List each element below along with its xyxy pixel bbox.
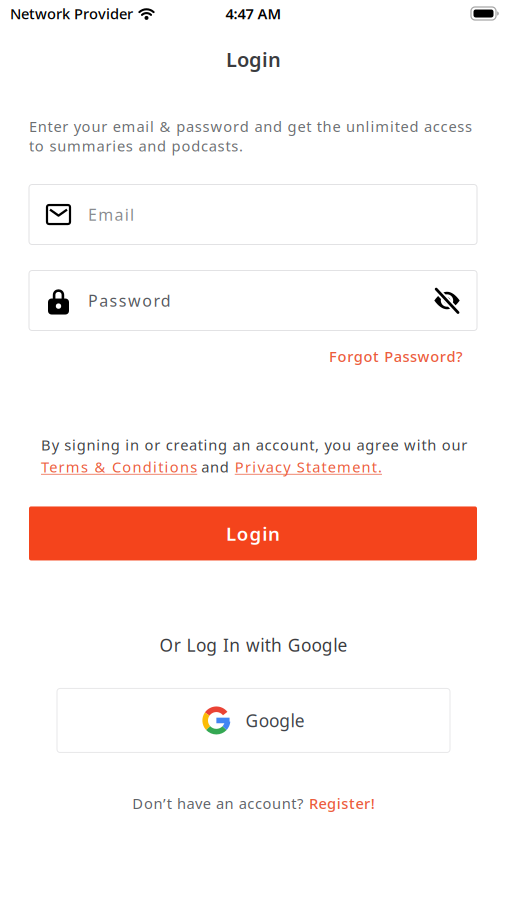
- staticText: Terms & Conditions: [41, 457, 197, 476]
- button[interactable]: Password: [29, 270, 477, 330]
- button[interactable]: Login: [29, 506, 477, 560]
- staticText: By signing in or creating an account, yo…: [41, 435, 467, 454]
- staticText: Or Log In with Google: [159, 633, 347, 656]
- staticText: 4:47 AM: [225, 4, 281, 23]
- button[interactable]: Show password: [434, 289, 460, 311]
- button[interactable]: Email: [29, 184, 477, 244]
- staticText: Enter your email & password and get the …: [29, 117, 472, 156]
- staticText: Register!: [309, 793, 375, 813]
- staticText: Login: [226, 521, 280, 546]
- staticText: Login: [226, 46, 281, 73]
- button[interactable]: Privacy Statement.: [235, 457, 382, 476]
- staticText: Forgot Password?: [329, 346, 463, 366]
- button[interactable]: Forgot Password?: [329, 346, 463, 366]
- button[interactable]: Google: [57, 688, 450, 752]
- button[interactable]: Register!: [309, 793, 375, 813]
- staticText: Network Provider: [10, 4, 133, 23]
- staticText: Google: [245, 709, 305, 732]
- staticText: Don’t have an account?: [132, 793, 303, 813]
- staticText: and: [201, 457, 229, 476]
- staticText: Privacy Statement.: [235, 457, 382, 476]
- staticText: Email: [88, 204, 134, 225]
- staticText: Password: [88, 290, 171, 311]
- button[interactable]: Terms & Conditions: [41, 457, 197, 476]
